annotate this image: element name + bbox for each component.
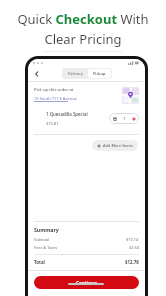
staticText: $10.14 (126, 237, 139, 242)
button[interactable]: 15 South 711 E Avenue (34, 96, 77, 101)
button[interactable]: Map (122, 87, 139, 104)
staticText: Continue (76, 280, 97, 286)
staticText: Delivery (68, 71, 83, 76)
staticText: Pickup (93, 71, 106, 76)
staticText: 1 (123, 116, 126, 122)
staticText: Quick Checkout With (17, 10, 149, 28)
button[interactable]: Continue (34, 276, 139, 289)
button[interactable]: Remove item (109, 113, 120, 124)
staticText: $10.81 (46, 121, 59, 126)
button[interactable]: Back (32, 69, 42, 79)
staticText: Fees & Taxes (34, 245, 58, 250)
staticText: Total (34, 259, 45, 265)
button[interactable]: Pickup (88, 69, 111, 78)
staticText: Subtotal (34, 237, 50, 242)
button[interactable]: Add More Items (92, 140, 138, 151)
staticText: 1 Quesadilla Special (46, 111, 88, 117)
staticText: Summary (34, 226, 59, 233)
button[interactable]: Delivery (63, 69, 88, 78)
staticText: Add More Items (103, 143, 133, 148)
button[interactable]: Add one (128, 113, 139, 124)
staticText: $2.64 (129, 245, 139, 250)
staticText: Pick up this order at (34, 87, 74, 93)
staticText: $12.78 (125, 259, 139, 265)
staticText: Clear Pricing (44, 30, 122, 48)
